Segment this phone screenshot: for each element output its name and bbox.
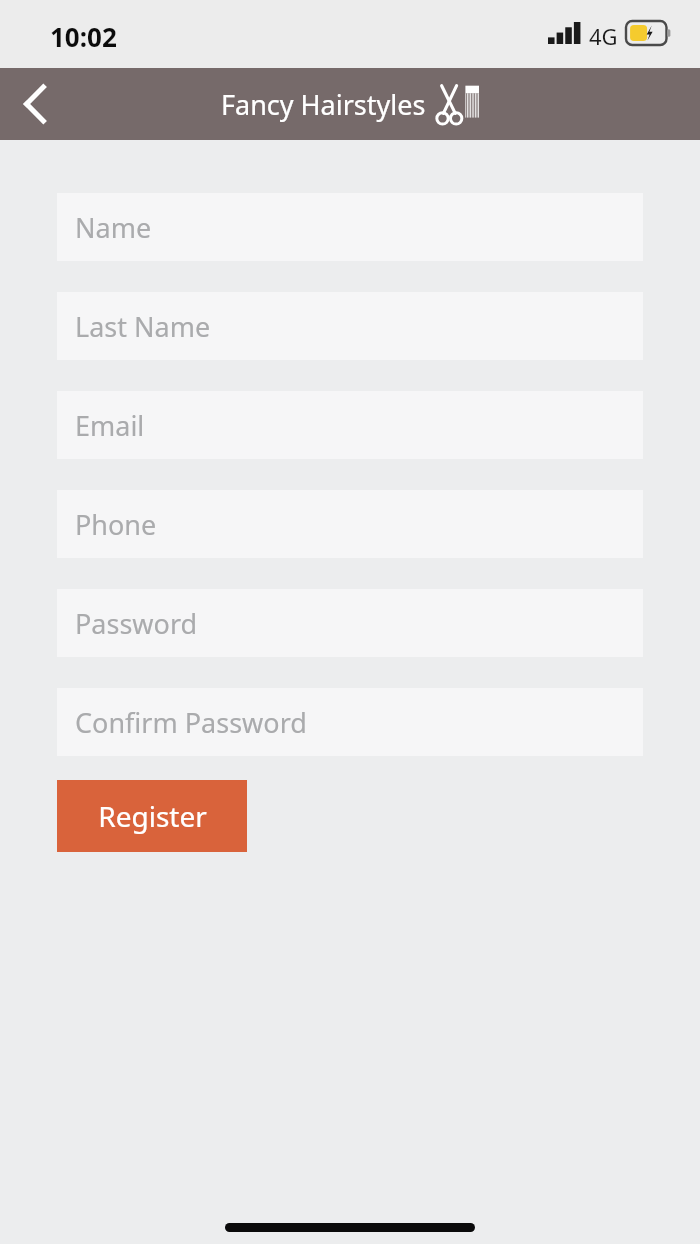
button[interactable]: Back [0,69,70,139]
staticText: 4G [589,21,618,51]
button[interactable]: Last Name [57,292,643,360]
button[interactable]: Phone [57,490,643,558]
button[interactable]: Name [57,193,643,261]
staticText: Fancy Hairstyles [221,86,426,123]
staticText: Confirm Password [75,704,307,741]
staticText: Last Name [75,308,211,345]
button[interactable]: Email [57,391,643,459]
staticText: Phone [75,506,157,543]
staticText: Email [75,407,145,444]
staticText: Register [98,797,207,835]
staticText: Password [75,605,198,642]
button[interactable]: Register [57,780,247,852]
button[interactable]: Confirm Password [57,688,643,756]
staticText: Name [75,209,152,246]
staticText: 10:02 [50,19,117,54]
button[interactable]: Password [57,589,643,657]
